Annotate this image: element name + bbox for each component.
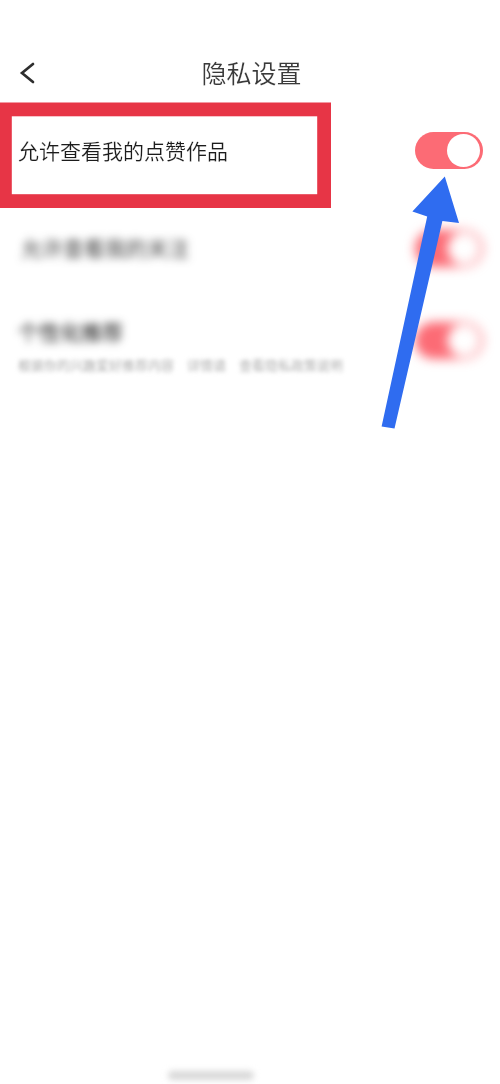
button[interactable]: Back	[0, 51, 44, 95]
button[interactable]: Privacy option	[0, 293, 500, 387]
staticText: 隐私设置	[201, 54, 302, 90]
button[interactable]: Allow others to see my liked works	[415, 132, 483, 169]
button[interactable]: 允许查看我的点赞作品	[0, 105, 500, 199]
button[interactable]: Privacy option	[0, 199, 500, 293]
staticText: 允许查看我的点赞作品	[18, 135, 415, 165]
